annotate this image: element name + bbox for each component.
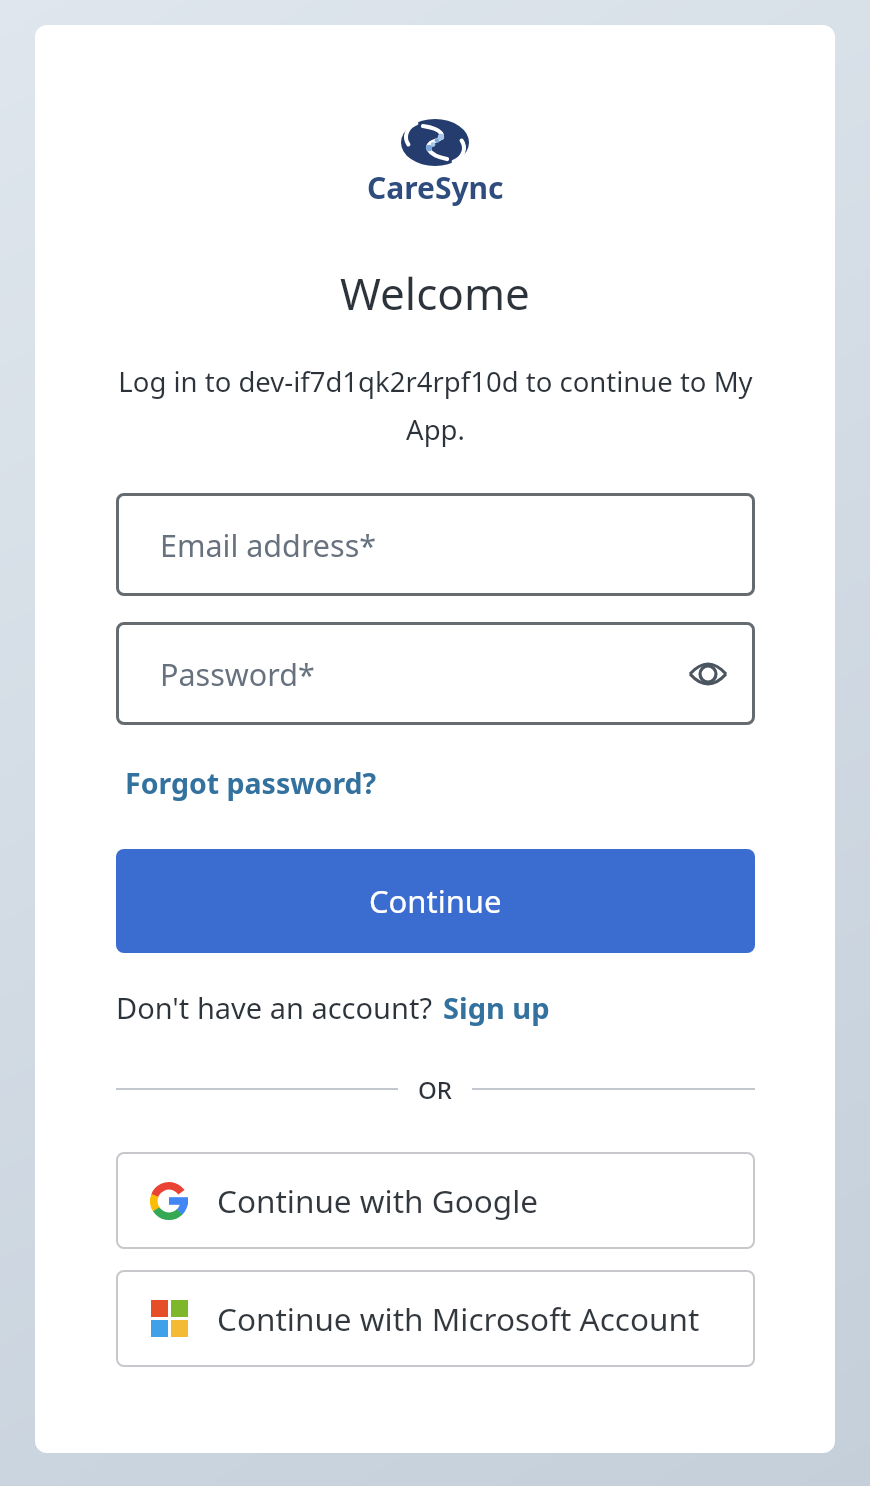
staticText: Forgot password? [125,764,377,803]
staticText: Sign up [443,988,550,1027]
staticText: Email address* [160,524,377,566]
staticText: Continue [369,880,502,922]
staticText: Log in to dev-if7d1qk2r4rpf10d to contin… [118,363,753,448]
staticText: CareSync [367,167,504,208]
button[interactable]: Continue [116,849,755,953]
button[interactable]: Sign up [443,988,550,1027]
staticText: Welcome [340,263,530,323]
button[interactable]: Continue with Google [116,1152,755,1249]
staticText: Continue with Google [217,1179,539,1222]
staticText: Continue with Microsoft Account [217,1297,700,1340]
staticText: OR [418,1073,452,1106]
button[interactable]: Email address* [116,493,755,596]
staticText: Don't have an account? [116,988,432,1027]
button[interactable]: Continue with Microsoft Account [116,1270,755,1367]
button[interactable]: Password* [116,622,755,725]
button[interactable]: Forgot password? [116,758,377,808]
staticText: Password* [160,653,315,695]
